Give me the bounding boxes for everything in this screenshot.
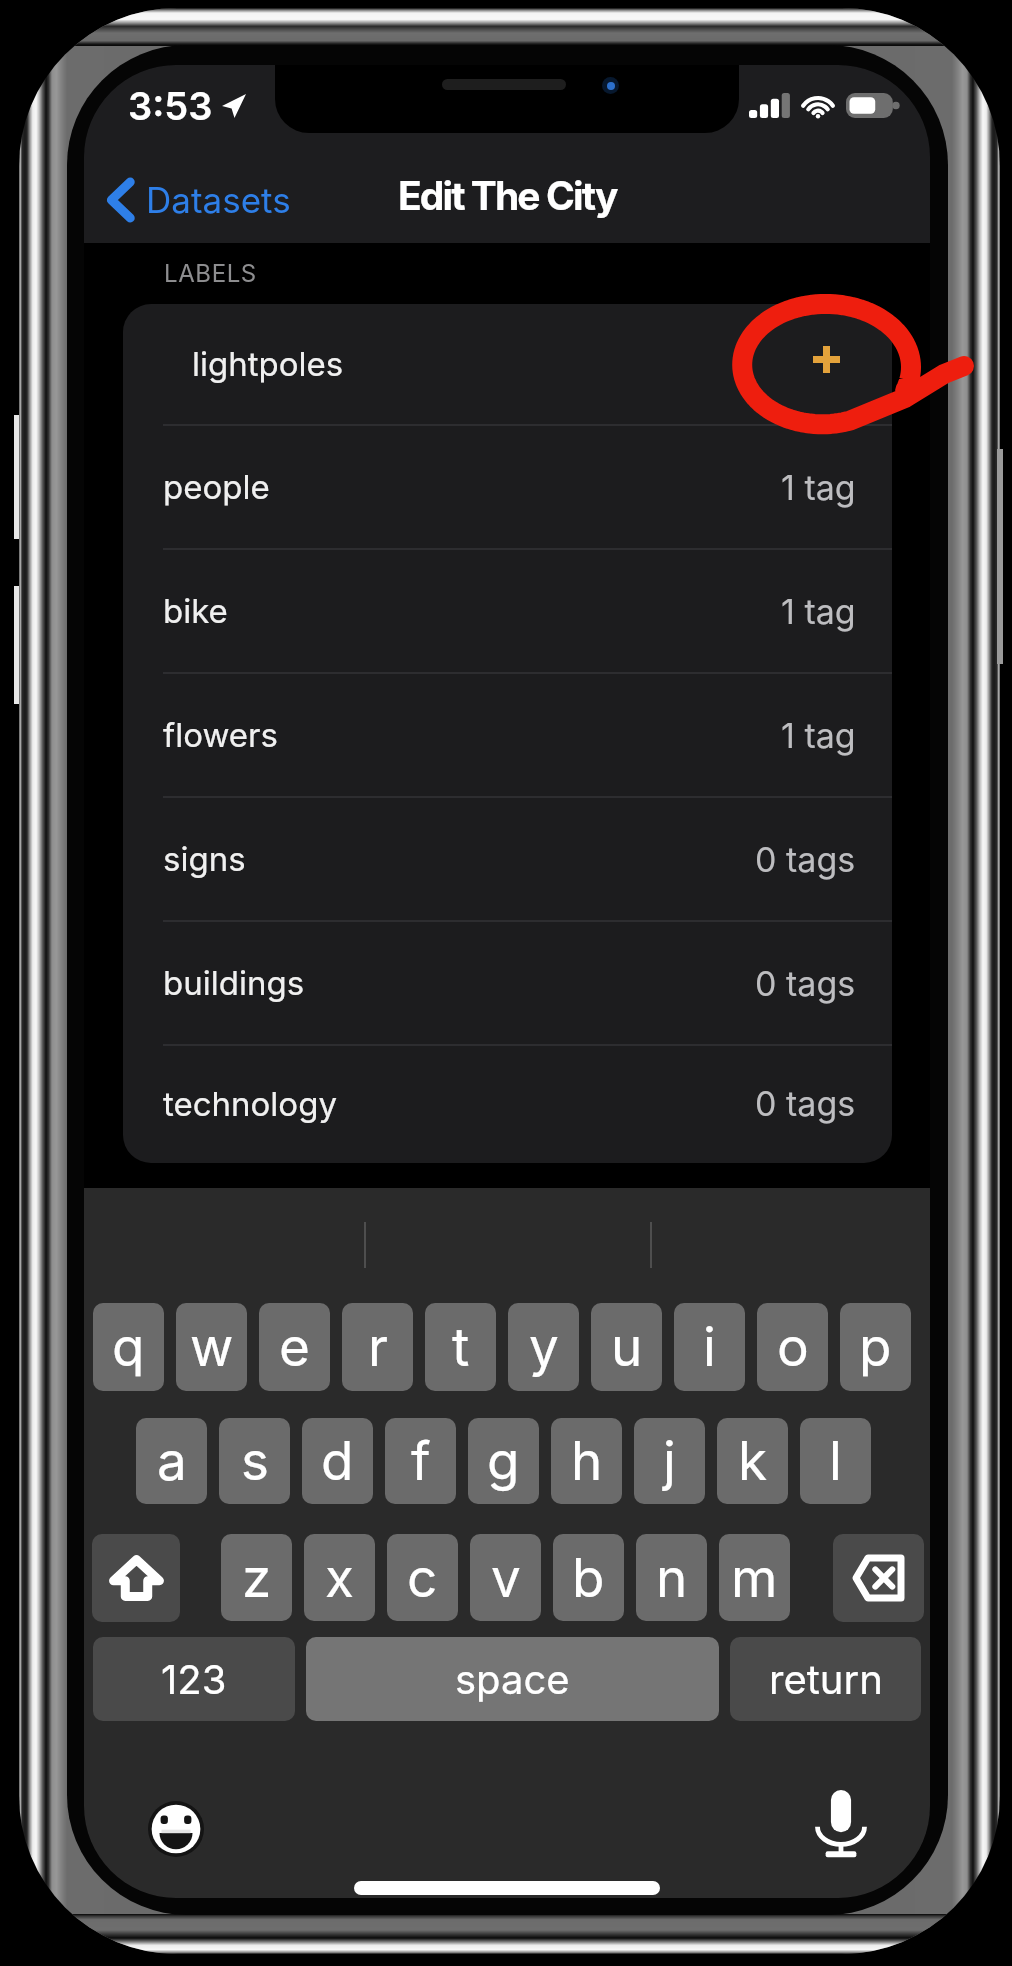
button[interactable]: a <box>136 1418 207 1504</box>
button[interactable]: Add label <box>800 333 852 385</box>
button[interactable]: flowers <box>123 674 892 796</box>
button[interactable]: Datasets <box>100 171 301 229</box>
button[interactable]: b <box>553 1534 624 1621</box>
button[interactable]: signs <box>123 798 892 920</box>
staticText: 1 tag <box>781 467 856 508</box>
button[interactable]: w <box>176 1303 247 1391</box>
staticText: 0 tags <box>755 839 856 880</box>
staticText: people <box>163 467 270 507</box>
button[interactable]: j <box>634 1418 705 1504</box>
staticText: 1 tag <box>781 591 856 632</box>
staticText: f <box>411 1429 431 1493</box>
staticText: t <box>452 1315 470 1379</box>
staticText: Datasets <box>146 179 291 221</box>
button[interactable]: f <box>385 1418 456 1504</box>
button[interactable]: Dictation <box>817 1790 865 1858</box>
staticText: bike <box>163 591 228 631</box>
button[interactable]: d <box>302 1418 373 1504</box>
button[interactable]: m <box>719 1534 790 1621</box>
staticText: 0 tags <box>755 1083 856 1124</box>
button[interactable]: bike <box>123 550 892 672</box>
staticText: n <box>656 1546 688 1610</box>
button[interactable]: e <box>259 1303 330 1391</box>
button[interactable]: c <box>387 1534 458 1621</box>
staticText: h <box>571 1429 603 1493</box>
button[interactable]: technology <box>123 1046 892 1161</box>
staticText: space <box>455 1655 570 1703</box>
staticText: r <box>368 1315 388 1379</box>
staticText: technology <box>163 1084 337 1124</box>
button[interactable]: Emoji keyboard <box>148 1801 204 1857</box>
staticText: Edit The City <box>398 172 617 219</box>
staticText: 123 <box>161 1655 227 1703</box>
staticText: b <box>572 1546 605 1610</box>
staticText: d <box>321 1429 354 1493</box>
staticText: q <box>112 1315 145 1379</box>
button[interactable]: s <box>219 1418 290 1504</box>
staticText: s <box>241 1429 269 1493</box>
staticText: g <box>487 1429 520 1493</box>
staticText: u <box>611 1315 643 1379</box>
staticText: buildings <box>163 963 305 1003</box>
button[interactable]: g <box>468 1418 539 1504</box>
staticText: j <box>663 1429 676 1493</box>
staticText: w <box>190 1315 234 1379</box>
staticText: 1 tag <box>781 715 856 756</box>
button[interactable]: r <box>342 1303 413 1391</box>
button[interactable]: Backspace <box>833 1534 924 1622</box>
button[interactable]: o <box>757 1303 828 1391</box>
staticText: e <box>279 1315 310 1379</box>
button[interactable]: return <box>730 1637 921 1721</box>
button[interactable]: people <box>123 426 892 548</box>
staticText: z <box>242 1546 272 1610</box>
staticText: signs <box>163 839 246 879</box>
button[interactable]: space <box>306 1637 719 1721</box>
button[interactable]: z <box>221 1534 292 1621</box>
staticText: 0 tags <box>755 963 856 1004</box>
button[interactable]: x <box>304 1534 375 1621</box>
staticText: o <box>777 1315 809 1379</box>
button[interactable]: u <box>591 1303 662 1391</box>
button[interactable]: l <box>800 1418 871 1504</box>
staticText: x <box>325 1546 354 1610</box>
button[interactable]: h <box>551 1418 622 1504</box>
button[interactable]: t <box>425 1303 496 1391</box>
staticText: LABELS <box>164 259 257 288</box>
button[interactable]: n <box>636 1534 707 1621</box>
staticText: return <box>769 1655 883 1703</box>
staticText: l <box>829 1429 842 1493</box>
button[interactable]: 123 <box>93 1637 295 1721</box>
button[interactable]: v <box>470 1534 541 1621</box>
button[interactable]: i <box>674 1303 745 1391</box>
staticText: k <box>738 1429 768 1493</box>
staticText: i <box>703 1315 716 1379</box>
button[interactable]: Shift <box>92 1534 180 1622</box>
button[interactable]: buildings <box>123 922 892 1044</box>
button[interactable]: p <box>840 1303 911 1391</box>
button[interactable]: q <box>93 1303 164 1391</box>
button[interactable]: y <box>508 1303 579 1391</box>
staticText: lightpoles <box>192 344 344 384</box>
button[interactable]: lightpoles <box>123 304 892 424</box>
staticText: flowers <box>163 715 278 755</box>
staticText: 3:53 <box>128 83 213 129</box>
staticText: m <box>731 1546 778 1610</box>
staticText: c <box>407 1546 438 1610</box>
staticText: y <box>529 1315 559 1379</box>
staticText: a <box>157 1429 187 1493</box>
button[interactable]: k <box>717 1418 788 1504</box>
staticText: v <box>491 1546 521 1610</box>
staticText: p <box>859 1315 892 1379</box>
